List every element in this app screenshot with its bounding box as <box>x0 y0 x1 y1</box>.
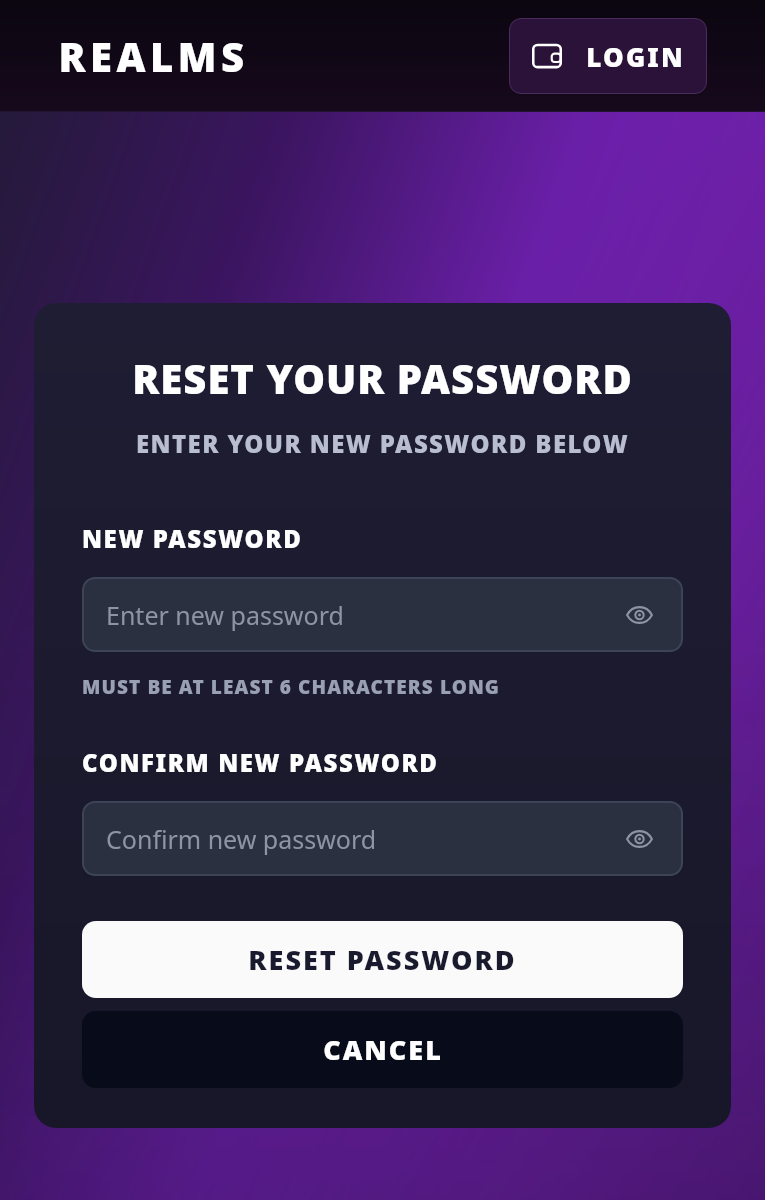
staticText: NEW PASSWORD <box>82 522 303 555</box>
staticText: RESET YOUR PASSWORD <box>82 351 683 405</box>
button[interactable]: Enter new password <box>82 577 683 652</box>
staticText: CANCEL <box>323 1031 443 1068</box>
staticText: Enter new password <box>106 598 344 632</box>
staticText: MUST BE AT LEAST 6 CHARACTERS LONG <box>82 674 501 700</box>
staticText: LOGIN <box>586 39 685 74</box>
staticText: ENTER YOUR NEW PASSWORD BELOW <box>82 427 683 460</box>
button[interactable]: RESET PASSWORD <box>82 921 683 998</box>
button[interactable]: Confirm new password <box>82 801 683 876</box>
button[interactable]: CANCEL <box>82 1011 683 1088</box>
button[interactable]: Show new password <box>619 595 659 635</box>
staticText: Confirm new password <box>106 822 377 856</box>
button[interactable]: Show confirm password <box>619 819 659 859</box>
staticText: RESET PASSWORD <box>248 941 517 978</box>
staticText: CONFIRM NEW PASSWORD <box>82 746 439 779</box>
button[interactable]: LOGIN <box>509 18 707 94</box>
button[interactable]: REALMS <box>58 29 249 83</box>
